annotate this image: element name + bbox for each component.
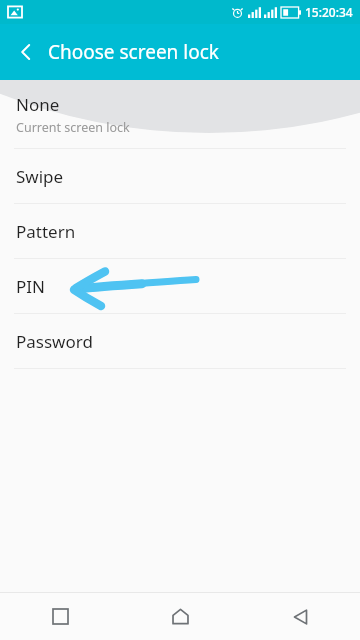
button[interactable]: Swipe — [0, 149, 360, 203]
staticText: Choose screen lock — [48, 39, 219, 65]
staticText: PIN — [16, 275, 45, 298]
button[interactable]: Back — [2, 28, 50, 76]
button[interactable]: PIN — [0, 259, 360, 313]
staticText: None — [16, 93, 60, 116]
staticText: Swipe — [16, 165, 64, 188]
staticText: Current screen lock — [16, 119, 130, 136]
button[interactable]: None — [0, 80, 360, 148]
staticText: Password — [16, 330, 93, 353]
staticText: Pattern — [16, 220, 76, 243]
button[interactable]: Pattern — [0, 204, 360, 258]
button[interactable]: Back — [240, 593, 360, 640]
button[interactable]: Recents — [0, 593, 120, 640]
button[interactable]: Home — [120, 593, 240, 640]
button[interactable]: Password — [0, 314, 360, 368]
staticText: 15:20:34 — [305, 4, 353, 20]
